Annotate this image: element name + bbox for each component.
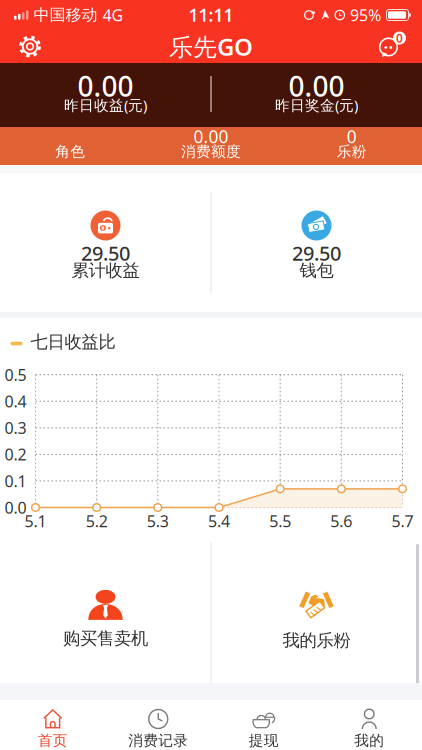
staticText: 我的乐粉 [282, 630, 350, 651]
staticText: 0 [396, 30, 403, 46]
staticText: 5.3 [147, 510, 169, 532]
button[interactable]: 消费记录 [105, 700, 211, 750]
staticText: 5.5 [269, 510, 291, 532]
staticText: 0.0 [4, 497, 26, 518]
staticText: 0.2 [4, 444, 26, 465]
staticText: 提现 [249, 731, 279, 749]
button[interactable]: 设置 [12, 30, 48, 63]
staticText: 0.00 [193, 125, 228, 148]
button[interactable]: 首页 [0, 700, 105, 750]
staticText: 乐先GO [169, 31, 253, 62]
staticText: 消费额度 [181, 142, 241, 160]
staticText: 钱包 [299, 260, 333, 281]
staticText: 5.2 [86, 510, 108, 532]
staticText: 0.5 [4, 364, 26, 385]
staticText: 5.6 [330, 510, 352, 532]
button[interactable]: 我的乐粉 [211, 542, 421, 683]
staticText: 5.1 [24, 510, 46, 532]
staticText: 0.1 [4, 470, 26, 491]
staticText: 0.4 [4, 391, 26, 412]
staticText: 七日收益比 [30, 331, 115, 353]
staticText: 29.50 [81, 240, 130, 266]
staticText: 昨日收益(元) [64, 95, 147, 115]
staticText: 0 [347, 125, 357, 148]
button[interactable]: ¥ [0, 173, 211, 312]
staticText: 11:11 [188, 3, 233, 26]
button[interactable]: 提现 [211, 700, 316, 750]
button[interactable]: 消息 [372, 30, 412, 63]
staticText: 中国移动 [33, 5, 97, 25]
staticText: 95% [350, 4, 381, 26]
staticText: ¥ [101, 223, 105, 232]
staticText: 购买售卖机 [63, 628, 148, 649]
staticText: 0.00 [77, 67, 133, 105]
staticText: 角色 [55, 142, 85, 160]
staticText: 首页 [38, 731, 68, 749]
button[interactable]: 我的 [316, 700, 422, 750]
staticText: 29.50 [292, 240, 341, 266]
staticText: 消费记录 [128, 731, 188, 749]
staticText: 累计收益 [71, 260, 139, 281]
staticText: 昨日奖金(元) [275, 95, 358, 115]
staticText: 5.7 [391, 510, 413, 532]
button[interactable]: 购买售卖机 [0, 542, 210, 683]
staticText: 乐粉 [337, 142, 367, 160]
staticText: 4G [102, 4, 123, 26]
staticText: 我的 [354, 731, 384, 749]
staticText: 0.00 [288, 67, 344, 105]
staticText: 0.3 [4, 417, 26, 438]
staticText: 5.4 [208, 510, 230, 532]
button[interactable]: 29.50 [211, 173, 422, 312]
